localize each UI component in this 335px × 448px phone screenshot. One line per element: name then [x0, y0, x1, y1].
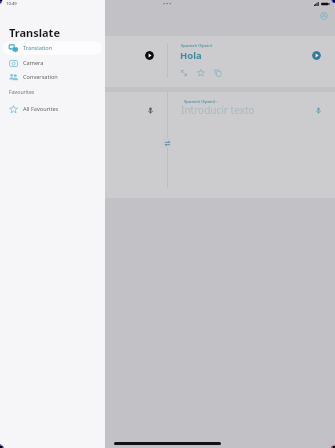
button[interactable]: Copy: [212, 67, 223, 78]
staticText: Introducir texto: [181, 103, 255, 117]
button[interactable]: Microphone: [144, 104, 156, 116]
button[interactable]: Translation: [3, 41, 102, 55]
staticText: 10:49: [6, 1, 17, 7]
staticText: All Favourites: [23, 105, 59, 113]
staticText: Hola: [180, 49, 202, 62]
staticText: Translate: [9, 25, 60, 40]
button[interactable]: Swap languages: [162, 138, 172, 148]
button[interactable]: All Favourites: [3, 102, 102, 116]
staticText: Conversation: [23, 73, 58, 81]
staticText: Spanish (Spain): [181, 42, 213, 48]
staticText: •••: [163, 0, 172, 8]
button[interactable]: Play source: [312, 51, 321, 60]
staticText: Camera: [23, 59, 44, 67]
staticText: Spanish (Spain) :: [184, 98, 218, 104]
button[interactable]: Expand: [178, 67, 189, 78]
staticText: Translation: [23, 44, 53, 52]
button[interactable]: Play translation: [145, 51, 154, 60]
button[interactable]: Account: [320, 12, 328, 20]
button[interactable]: Camera: [3, 56, 102, 70]
button[interactable]: Conversation: [3, 70, 102, 84]
staticText: Favourites: [9, 88, 35, 95]
button[interactable]: Voice input: [312, 104, 324, 116]
button[interactable]: Favourite: [195, 67, 206, 78]
